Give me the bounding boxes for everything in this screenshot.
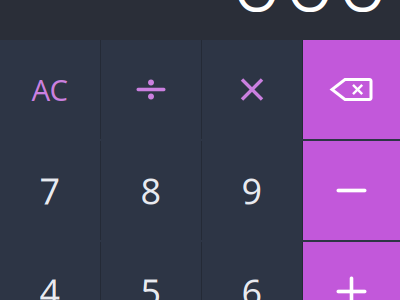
button[interactable]: 6 — [202, 242, 302, 300]
button[interactable]: Multiply — [202, 40, 302, 139]
button[interactable]: Delete — [303, 40, 400, 139]
staticText: 7 — [39, 167, 60, 214]
button[interactable]: 5 — [101, 242, 201, 300]
button[interactable]: Plus — [303, 242, 400, 300]
button[interactable]: 8 — [101, 141, 201, 240]
staticText: 8 — [140, 167, 161, 214]
staticText: AC — [31, 70, 68, 109]
staticText: 9 — [241, 167, 262, 214]
staticText: 000 — [230, 0, 389, 37]
button[interactable]: 7 — [0, 141, 100, 240]
staticText: 4 — [39, 268, 60, 300]
staticText: 5 — [140, 268, 161, 300]
button[interactable]: AC — [0, 40, 100, 139]
button[interactable]: Divide — [101, 40, 201, 139]
button[interactable]: 9 — [202, 141, 302, 240]
button[interactable]: Minus — [303, 141, 400, 240]
button[interactable]: 4 — [0, 242, 100, 300]
staticText: 6 — [241, 268, 262, 300]
